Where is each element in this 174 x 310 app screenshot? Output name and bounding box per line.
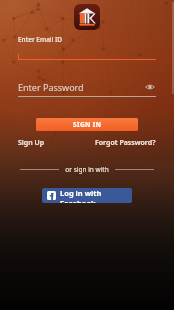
staticText: Enter Password [18,81,144,93]
staticText: SIGN IN [73,120,102,129]
staticText: Sign Up [18,138,45,148]
button[interactable]: Enter Password [18,81,156,97]
button[interactable]: Log in with Facebook [42,188,132,203]
button[interactable]: Enter Email ID [18,35,156,60]
button[interactable]: Forgot Password? [95,138,156,148]
staticText: Enter Email ID [18,35,63,44]
staticText: or sign in with [65,165,109,174]
button[interactable]: Show password [144,81,156,93]
button[interactable]: SIGN IN [36,118,138,131]
button[interactable]: Sign Up [18,138,45,148]
staticText: Log in with Facebook [60,188,127,203]
other: App logo [74,4,100,30]
staticText: Forgot Password? [95,138,156,148]
